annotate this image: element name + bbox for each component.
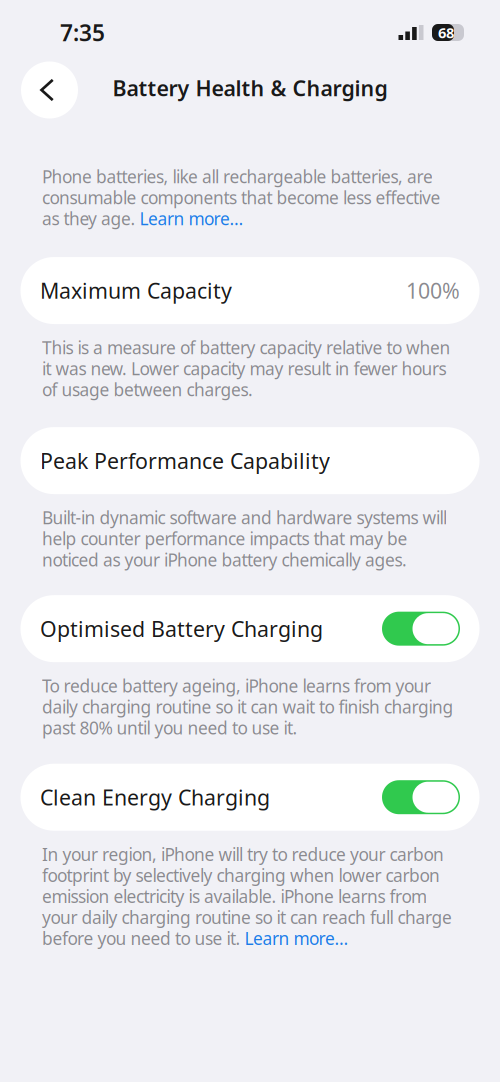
button[interactable]: On	[382, 612, 460, 646]
staticText: Battery Health & Charging	[112, 74, 387, 102]
staticText: Clean Energy Charging	[40, 783, 270, 811]
staticText: Built-in dynamic software and hardware s…	[42, 506, 447, 571]
button[interactable]: Peak Performance Capability	[20, 427, 479, 494]
staticText: Peak Performance Capability	[40, 446, 330, 475]
button[interactable]: Maximum Capacity	[20, 257, 479, 324]
staticText: To reduce battery ageing, iPhone learns …	[42, 674, 453, 739]
staticText: Optimised Battery Charging	[40, 614, 323, 643]
staticText: 100%	[406, 276, 460, 305]
staticText: 7:35	[60, 17, 105, 47]
staticText: This is a measure of battery capacity re…	[42, 336, 450, 401]
button[interactable]: On	[382, 780, 460, 814]
button[interactable]: Back	[21, 61, 78, 118]
staticText: Maximum Capacity	[40, 276, 232, 305]
button[interactable]: Clean Energy Charging	[20, 764, 479, 831]
button[interactable]: Optimised Battery Charging	[20, 595, 479, 662]
staticText: In your region, iPhone will try to reduc…	[42, 843, 452, 950]
staticText: 68	[438, 23, 454, 42]
staticText: Phone batteries, like all rechargeable b…	[42, 165, 440, 230]
